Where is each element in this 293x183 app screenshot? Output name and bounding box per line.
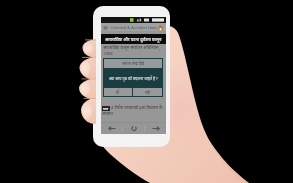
- button[interactable]: Home: [157, 24, 164, 31]
- button[interactable]: Menu: [103, 25, 108, 30]
- button[interactable]: नहीं: [133, 88, 162, 96]
- staticText: आपराधिक और घटना दुर्घटना कानून: [105, 36, 162, 42]
- staticText: अगला लेख देखें: [122, 61, 144, 66]
- button[interactable]: Forward: [145, 123, 166, 134]
- staticText: नहीं: [145, 90, 151, 95]
- staticText: क्या आप पृष्ठ को बदलना चाहते हैं ?: [109, 76, 158, 81]
- staticText: धारा: [103, 106, 109, 111]
- staticText: 4 विशेष न्यायालयों द्वारा विचारण के: [110, 105, 163, 111]
- staticText: Criminal & Accident Laws: [111, 25, 157, 30]
- staticText: हाँ: [116, 90, 120, 95]
- staticText: 1908: [103, 51, 113, 57]
- button[interactable]: अगला लेख देखें: [104, 59, 162, 68]
- button[interactable]: Refresh: [123, 123, 144, 134]
- button[interactable]: Menu: [101, 23, 166, 31]
- button[interactable]: हाँ: [104, 88, 132, 96]
- button[interactable]: Back: [101, 123, 122, 134]
- staticText: अपराध: [102, 111, 113, 117]
- staticText: आपराधिक कानून संशोधन अधिनियम,: [103, 45, 160, 51]
